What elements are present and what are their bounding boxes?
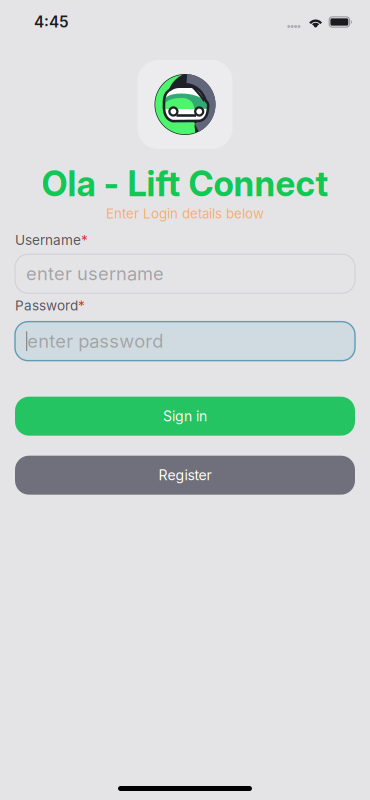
staticText: Username — [15, 232, 81, 248]
staticText: Enter Login details below — [106, 206, 264, 222]
staticText: enter username — [26, 263, 164, 285]
staticText: Sign in — [163, 408, 207, 425]
button[interactable]: Sign in — [15, 397, 355, 436]
staticText: Password — [15, 297, 78, 314]
button[interactable]: Register — [15, 456, 355, 495]
staticText: * — [81, 232, 88, 248]
staticText: Ola - Lift Connect — [41, 163, 328, 205]
staticText: 4:45 — [34, 13, 69, 31]
staticText: Register — [158, 467, 211, 484]
staticText: * — [78, 297, 85, 314]
staticText: enter password — [27, 330, 163, 352]
